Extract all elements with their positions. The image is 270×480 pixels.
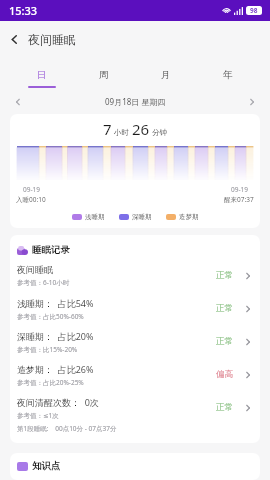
staticText: 周 [99,69,109,81]
staticText: 正常 [216,402,233,413]
staticText: 小时 [114,128,129,137]
staticText: 深睡期 [132,213,152,221]
button[interactable]: 造梦期： 占比26% [10,358,260,391]
button[interactable]: 深睡期： 占比20% [10,325,260,358]
staticText: 参考值：占比20%-25% [17,378,84,387]
button[interactable]: Previous day [7,91,29,113]
staticText: 正常 [216,336,233,347]
staticText: 浅睡期： 占比54% [17,297,94,309]
staticText: 26 [132,119,150,139]
staticText: 夜间睡眠 [17,264,53,275]
staticText: 偏高 [216,369,233,380]
staticText: 入睡00:10 [16,195,46,204]
staticText: 15:33 [9,3,38,18]
staticText: 日 [37,69,47,81]
staticText: 醒来07:37 [224,195,254,204]
button[interactable]: Next day [241,91,263,113]
button[interactable]: 月 [135,56,197,89]
staticText: 正常 [216,303,233,314]
staticText: 09-19 [23,185,40,194]
staticText: 参考值：比15%-20% [17,345,78,354]
staticText: 造梦期： 占比26% [17,363,94,375]
staticText: 09-19 [231,185,248,194]
staticText: 分钟 [152,128,167,137]
button[interactable]: 浅睡期： 占比54% [10,292,260,325]
button[interactable]: 夜间睡眠 [10,259,260,292]
staticText: 深睡期： 占比20% [17,330,94,342]
staticText: 月 [161,69,171,81]
staticText: 知识点 [32,460,61,472]
staticText: 98 [250,6,258,15]
staticText: 正常 [216,270,233,281]
button[interactable]: 日 [11,56,73,89]
staticText: 7 [103,119,112,139]
staticText: 夜间清醒次数： 0次 [17,396,99,408]
staticText: 造梦期 [179,213,199,221]
button[interactable]: Back [0,24,28,54]
staticText: 09月18日 星期四 [105,96,166,107]
staticText: 浅睡期 [85,213,105,221]
staticText: 夜间睡眠 [28,32,76,47]
staticText: 参考值：6-10小时 [17,278,70,287]
staticText: 参考值：占比50%-60% [17,312,84,321]
button[interactable]: 夜间清醒次数： 0次 [10,391,260,424]
button[interactable]: 周 [73,56,135,89]
staticText: 睡眠记录 [32,244,70,256]
button[interactable]: 年 [197,56,259,89]
staticText: 参考值：≤1次 [17,411,59,420]
staticText: 年 [223,69,233,81]
staticText: 第1段睡眠: 00点10分 - 07点37分 [17,424,117,433]
